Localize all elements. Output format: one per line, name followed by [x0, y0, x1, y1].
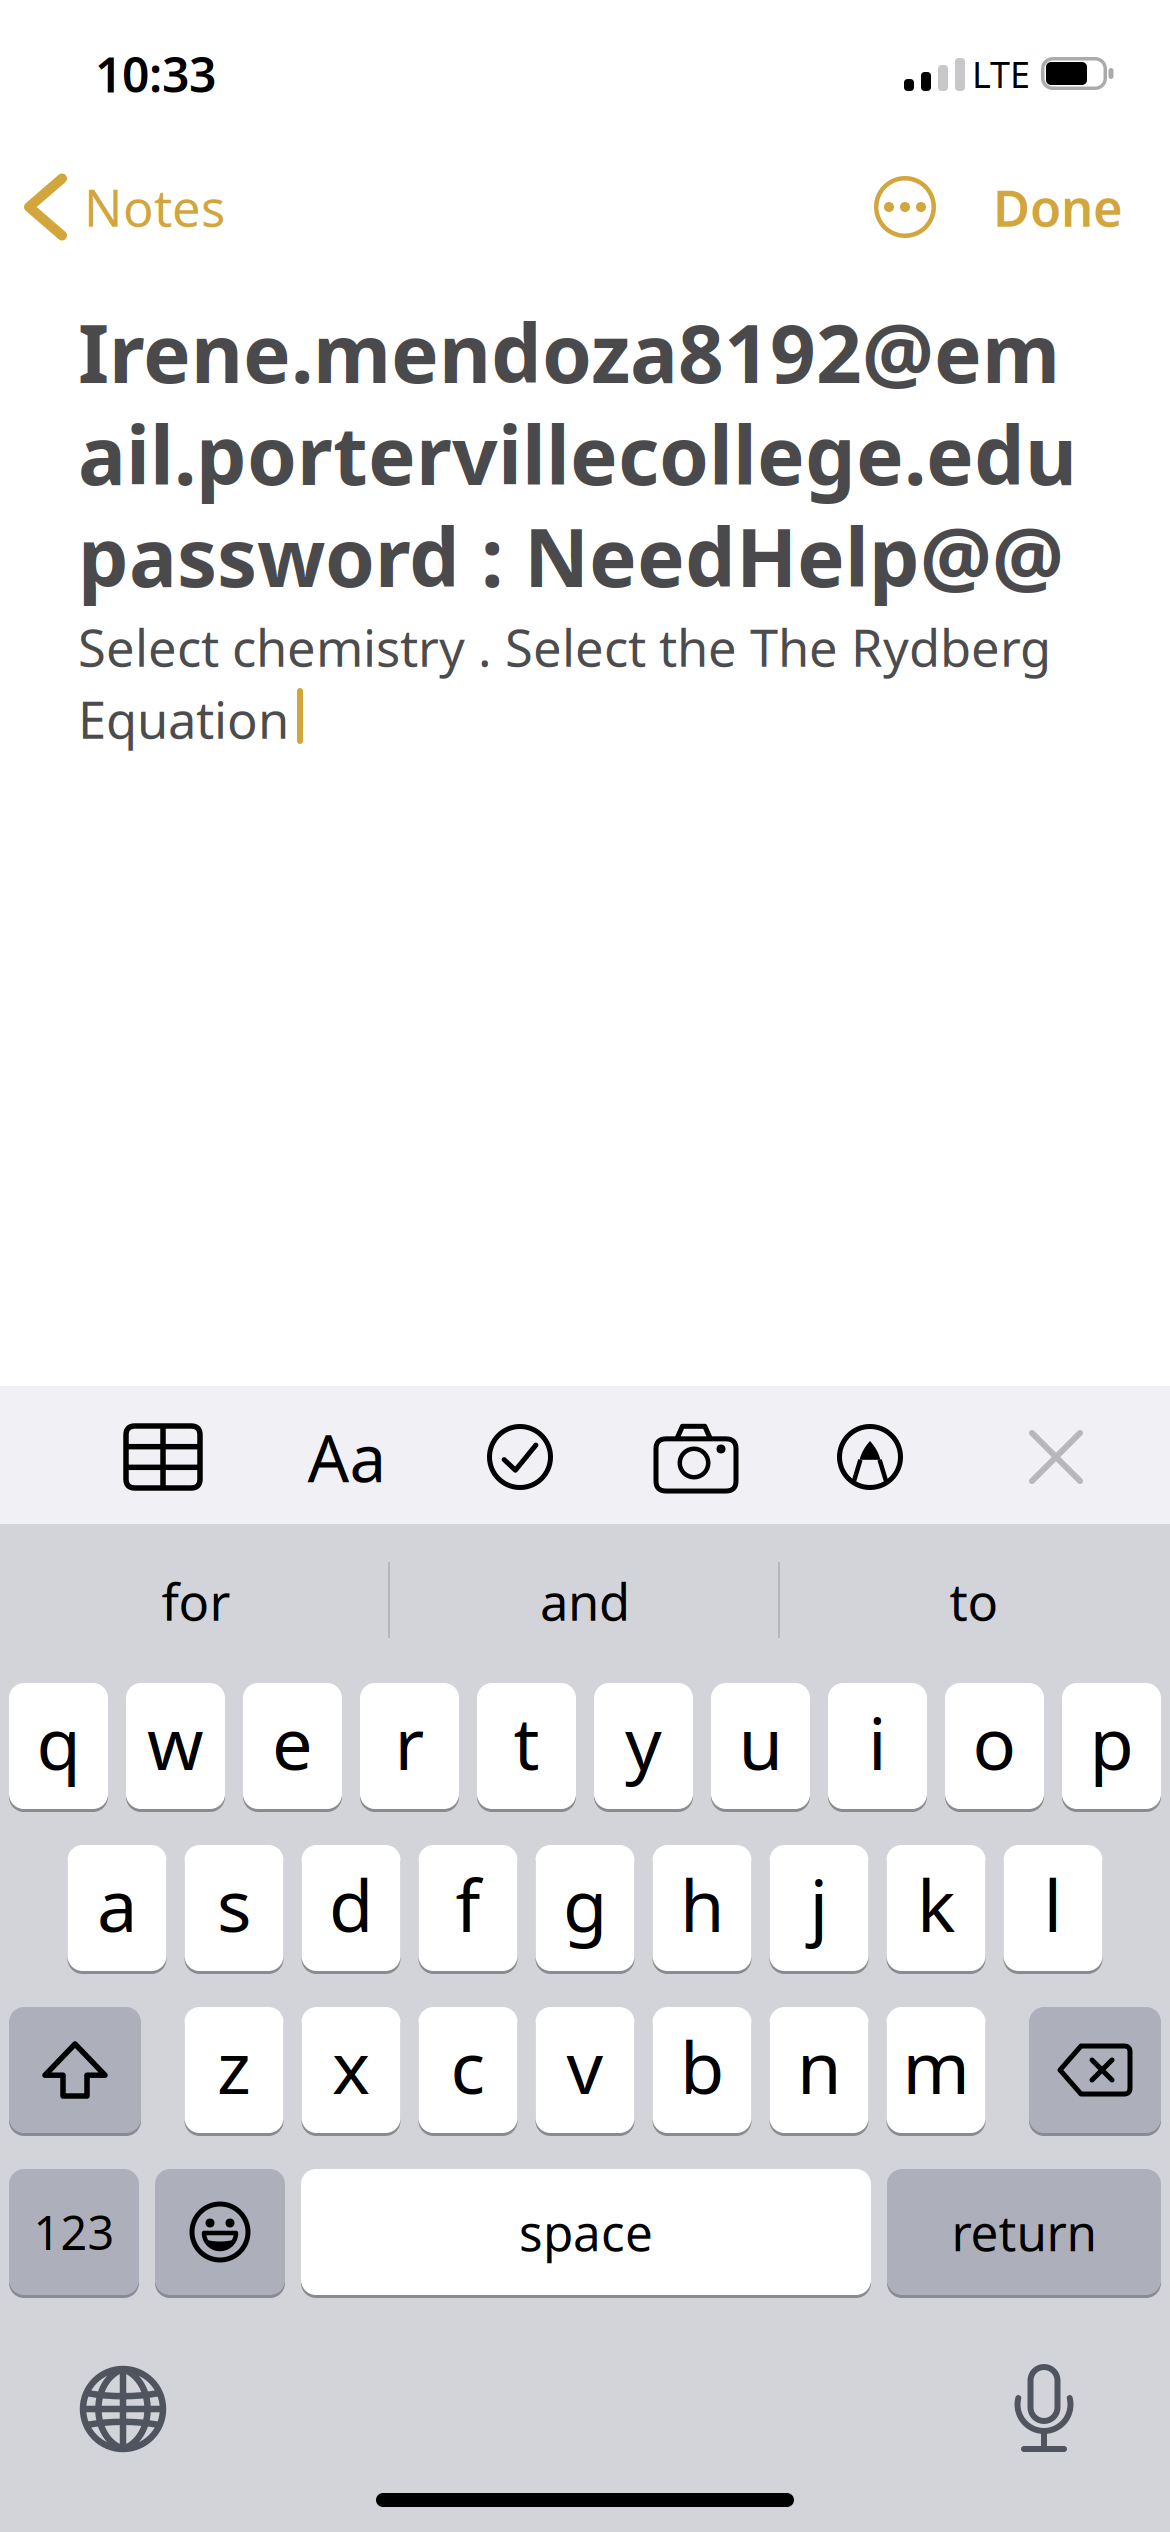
button[interactable]: h [652, 1843, 751, 1972]
button[interactable]: return [887, 2167, 1161, 2296]
staticText: t [513, 1694, 539, 1790]
button[interactable]: space [301, 2167, 871, 2296]
button[interactable]: q [9, 1681, 108, 1810]
staticText: for [161, 1567, 230, 1635]
button[interactable]: Insert photo [641, 1403, 751, 1513]
staticText: z [217, 2018, 251, 2114]
staticText: Irene.mendoza8192@em [78, 299, 1060, 405]
staticText: h [680, 1856, 724, 1952]
button[interactable]: a [67, 1843, 166, 1972]
button[interactable]: Delete [1029, 2005, 1161, 2134]
button[interactable]: Checklist [465, 1402, 575, 1512]
button[interactable]: v [535, 2005, 634, 2134]
button[interactable]: z [184, 2005, 283, 2134]
button[interactable]: p [1062, 1681, 1161, 1810]
staticText: Notes [84, 173, 225, 241]
staticText: e [272, 1694, 313, 1790]
staticText: x [332, 2018, 370, 2114]
button[interactable]: n [769, 2005, 868, 2134]
staticText: Done [993, 173, 1123, 241]
button[interactable]: for [6, 1526, 386, 1676]
staticText: i [868, 1694, 887, 1790]
button[interactable]: More [872, 174, 938, 240]
staticText: 123 [33, 2201, 114, 2263]
staticText: Equation [78, 685, 289, 753]
staticText: l [1043, 1856, 1062, 1952]
staticText: g [563, 1856, 607, 1952]
button[interactable]: k [886, 1843, 985, 1972]
staticText: u [738, 1694, 782, 1790]
button[interactable]: r [360, 1681, 459, 1810]
button[interactable]: t [477, 1681, 576, 1810]
button[interactable]: x [301, 2005, 400, 2134]
button[interactable]: j [769, 1843, 868, 1972]
staticText: f [455, 1856, 480, 1952]
button[interactable]: Done [903, 167, 1123, 247]
button[interactable]: Next keyboard [63, 2349, 183, 2469]
staticText: p [1089, 1694, 1133, 1790]
staticText: space [519, 2199, 653, 2265]
staticText: return [951, 2199, 1096, 2265]
staticText: d [329, 1856, 373, 1952]
staticText: to [949, 1567, 998, 1635]
staticText: s [217, 1856, 251, 1952]
button[interactable]: to [784, 1526, 1164, 1676]
button[interactable]: Format [292, 1402, 402, 1512]
staticText: v [566, 2018, 603, 2114]
staticText: password : NeedHelp@@ [78, 503, 1064, 609]
button[interactable]: and [395, 1526, 775, 1676]
button[interactable]: l [1003, 1843, 1102, 1972]
button[interactable]: b [652, 2005, 751, 2134]
button[interactable]: m [886, 2005, 985, 2134]
staticText: r [394, 1694, 424, 1790]
staticText: y [625, 1694, 662, 1790]
staticText: and [540, 1567, 630, 1635]
staticText: n [797, 2018, 841, 2114]
staticText: LTE [972, 50, 1030, 98]
button[interactable]: Markup [815, 1402, 925, 1512]
staticText: a [97, 1856, 137, 1952]
button[interactable]: Emoji [155, 2167, 285, 2296]
staticText: 10:33 [95, 42, 216, 106]
staticText: Select chemistry . Select the The Rydber… [78, 613, 1051, 681]
button[interactable]: e [243, 1681, 342, 1810]
staticText: w [147, 1694, 204, 1790]
staticText: ail.portervillecollege.edu [78, 401, 1077, 507]
staticText: o [972, 1694, 1016, 1790]
staticText: j [809, 1856, 828, 1952]
button[interactable]: w [126, 1681, 225, 1810]
button[interactable]: y [594, 1681, 693, 1810]
button[interactable]: d [301, 1843, 400, 1972]
staticText: Aa [307, 1414, 386, 1500]
button[interactable]: g [535, 1843, 634, 1972]
staticText: k [917, 1856, 955, 1952]
button[interactable]: o [945, 1681, 1044, 1810]
button[interactable]: c [418, 2005, 517, 2134]
button[interactable]: Insert table [108, 1402, 218, 1512]
button[interactable]: u [711, 1681, 810, 1810]
button[interactable]: Dictation [984, 2350, 1104, 2470]
button[interactable]: f [418, 1843, 517, 1972]
button[interactable]: Dismiss keyboard [1001, 1402, 1111, 1512]
staticText: b [680, 2018, 724, 2114]
staticText: q [36, 1694, 80, 1790]
button[interactable]: 123 [9, 2167, 139, 2296]
button[interactable]: Notes [29, 167, 329, 247]
button[interactable]: s [184, 1843, 283, 1972]
staticText: c [450, 2018, 485, 2114]
button[interactable]: i [828, 1681, 927, 1810]
staticText: m [902, 2018, 969, 2114]
button[interactable]: Shift [9, 2005, 141, 2134]
